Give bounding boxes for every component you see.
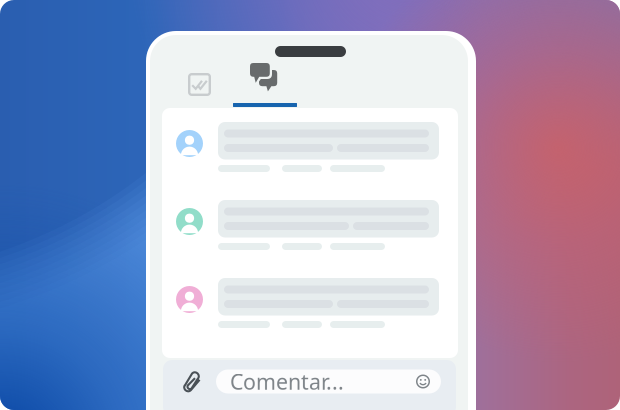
button[interactable]: Attach file xyxy=(175,365,209,399)
staticText: Comentar... xyxy=(230,367,344,396)
button[interactable]: Tasks xyxy=(177,68,222,101)
button[interactable]: Comentar... xyxy=(216,369,441,393)
button[interactable]: Messages xyxy=(233,63,297,107)
